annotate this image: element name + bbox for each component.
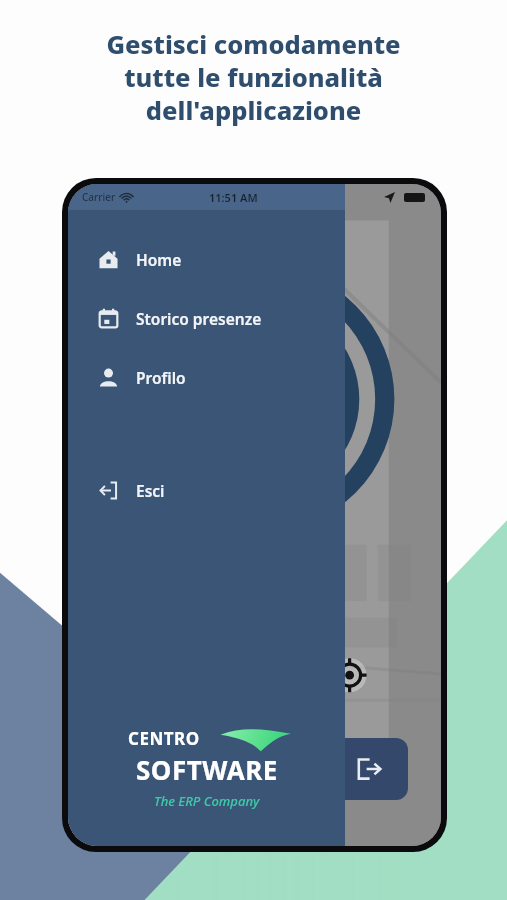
button[interactable]: Esci bbox=[68, 470, 345, 510]
button[interactable]: Home bbox=[68, 239, 345, 279]
staticText: Carrier bbox=[82, 190, 116, 204]
staticText: CENTRO bbox=[128, 727, 200, 750]
button[interactable]: Storico presenze bbox=[68, 298, 345, 338]
button[interactable]: Timbra uscita bbox=[330, 738, 408, 800]
staticText: Gestisci comodamente tutte le funzionali… bbox=[106, 27, 401, 127]
staticText: Esci bbox=[136, 480, 165, 501]
staticText: Profilo bbox=[136, 367, 186, 388]
button[interactable]: Profilo bbox=[68, 357, 345, 397]
staticText: Home bbox=[136, 249, 182, 270]
staticText: SOFTWARE bbox=[136, 752, 278, 787]
staticText: 11:51 AM bbox=[209, 190, 258, 205]
staticText: The ERP Company bbox=[154, 792, 260, 810]
staticText: Storico presenze bbox=[136, 308, 262, 329]
